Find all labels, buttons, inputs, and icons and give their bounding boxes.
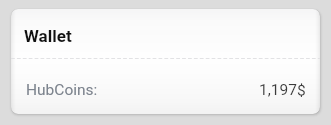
staticText: 1,197$ — [259, 81, 306, 99]
staticText: Wallet — [24, 26, 72, 46]
button[interactable]: Wallet card — [11, 9, 320, 114]
button[interactable]: HubCoins: — [11, 59, 320, 114]
staticText: HubCoins: — [26, 81, 98, 99]
